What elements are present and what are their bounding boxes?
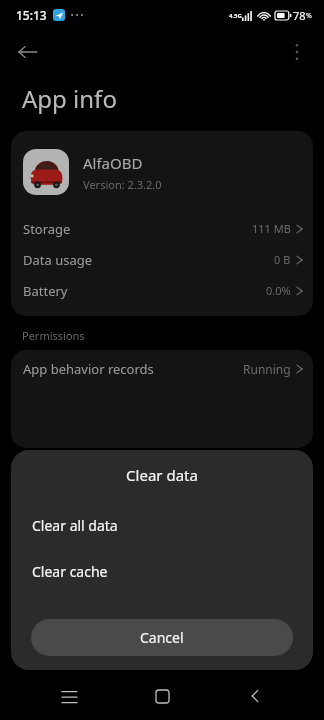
button[interactable]: App behavior records	[11, 350, 313, 388]
staticText: Permissions	[22, 328, 85, 343]
button[interactable]: Battery	[11, 275, 313, 306]
staticText: App info	[22, 82, 117, 115]
staticText: 15:13	[16, 7, 47, 23]
staticText: 0 B	[274, 252, 291, 267]
staticText: 4.5G	[229, 12, 242, 20]
staticText: 78	[293, 8, 306, 23]
staticText: Storage	[23, 220, 71, 238]
button[interactable]: Clear cache	[11, 556, 313, 586]
staticText: Clear cache	[32, 562, 108, 581]
staticText: Clear all data	[32, 516, 118, 535]
button[interactable]: More options	[279, 34, 315, 70]
staticText: App behavior records	[23, 360, 154, 378]
button[interactable]: Clear all data	[11, 510, 313, 540]
button[interactable]: Storage	[11, 213, 313, 244]
button[interactable]: Back	[10, 34, 46, 70]
staticText: Cancel	[140, 628, 184, 647]
staticText: 0.0%	[266, 283, 291, 298]
button[interactable]: Back	[231, 672, 279, 720]
staticText: Version: 2.3.2.0	[83, 177, 162, 192]
button[interactable]: Cancel	[31, 619, 293, 656]
button[interactable]: Data usage	[11, 244, 313, 275]
button[interactable]: Recents	[45, 672, 93, 720]
button[interactable]: AlfaOBD	[11, 131, 313, 213]
staticText: Battery	[23, 282, 68, 300]
staticText: 111 MB	[252, 221, 291, 236]
button[interactable]: Home	[138, 672, 186, 720]
staticText: AlfaOBD	[83, 153, 143, 173]
staticText: %	[306, 11, 312, 21]
staticText: Clear data	[11, 465, 313, 485]
staticText: Data usage	[23, 251, 93, 269]
staticText: Running	[243, 361, 291, 377]
